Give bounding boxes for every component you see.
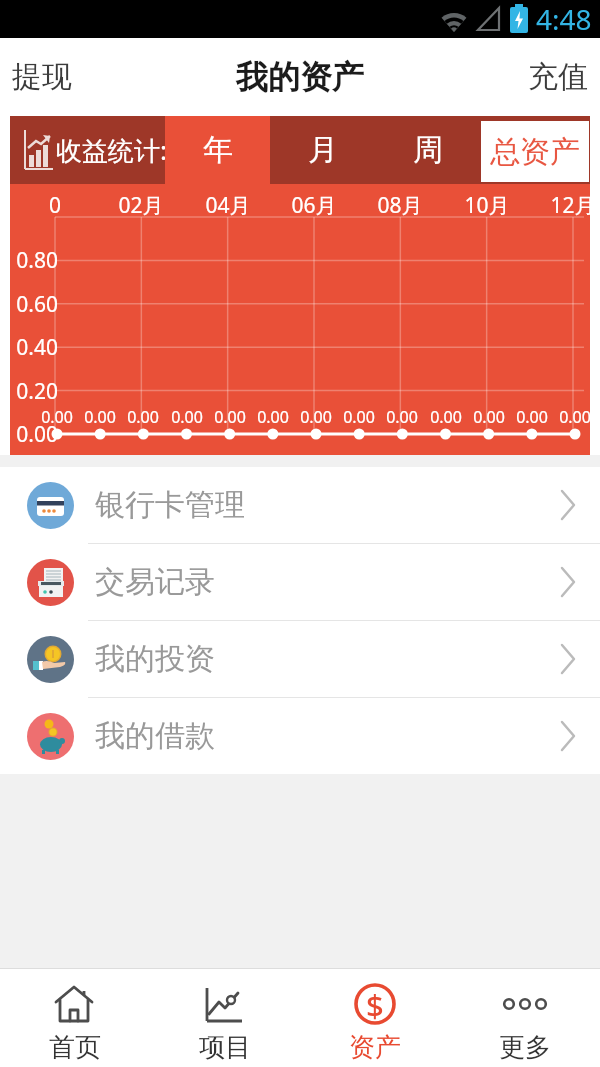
staticText: 我的资产 (236, 57, 364, 97)
staticText: 0.00 (123, 406, 163, 428)
staticText: $ (366, 984, 384, 1026)
button[interactable]: 首页 (0, 969, 150, 1067)
staticText: 我的投资 (95, 640, 560, 678)
staticText: 收益统计: (56, 132, 167, 168)
staticText: 4:48 (536, 0, 592, 38)
button[interactable]: 月 (270, 116, 375, 184)
button[interactable]: 项目 (150, 969, 300, 1067)
staticText: 首页 (49, 1031, 101, 1064)
staticText: 资产 (349, 1031, 401, 1064)
button[interactable]: 年 (165, 116, 270, 184)
staticText: 0.00 (426, 406, 466, 428)
staticText: 更多 (499, 1031, 551, 1064)
staticText: 02月 (106, 191, 176, 220)
staticText: 0 (20, 191, 90, 220)
staticText: 06月 (279, 191, 349, 220)
staticText: 银行卡管理 (95, 486, 560, 524)
staticText: 月 (308, 131, 338, 169)
staticText: 08月 (365, 191, 435, 220)
staticText: 周 (413, 131, 443, 169)
staticText: 交易记录 (95, 563, 560, 601)
staticText: 项目 (199, 1031, 251, 1064)
staticText: 0.00 (382, 406, 422, 428)
button[interactable]: 提现 (0, 50, 84, 104)
staticText: 0.00 (296, 406, 336, 428)
staticText: 0.00 (555, 406, 595, 428)
staticText: 0.40 (14, 333, 58, 362)
staticText: 0.20 (14, 377, 58, 406)
staticText: 0.00 (80, 406, 120, 428)
button[interactable]: 充值 (516, 50, 600, 104)
staticText: 0.00 (512, 406, 552, 428)
staticText: 0.00 (253, 406, 293, 428)
button[interactable]: 我的借款 (0, 698, 600, 774)
staticText: 0.00 (339, 406, 379, 428)
staticText: 0.00 (469, 406, 509, 428)
staticText: 提现 (12, 58, 72, 96)
staticText: 12月 (538, 191, 600, 220)
button[interactable]: $ (300, 969, 450, 1067)
staticText: 0.00 (210, 406, 250, 428)
button[interactable]: 总资产 (481, 121, 589, 182)
staticText: 0.00 (14, 420, 58, 449)
staticText: 年 (203, 131, 233, 169)
staticText: 总资产 (490, 133, 580, 171)
staticText: 04月 (193, 191, 263, 220)
button[interactable]: 我的投资 (0, 621, 600, 697)
staticText: 充值 (528, 58, 588, 96)
staticText: 0.60 (14, 290, 58, 319)
staticText: 10月 (452, 191, 522, 220)
staticText: 0.00 (167, 406, 207, 428)
staticText: 0.00 (37, 406, 77, 428)
button[interactable]: 更多 (450, 969, 600, 1067)
staticText: 我的借款 (95, 717, 560, 755)
button[interactable]: 周 (375, 116, 480, 184)
button[interactable]: 银行卡管理 (0, 467, 600, 543)
staticText: 0.80 (14, 246, 58, 275)
button[interactable]: 交易记录 (0, 544, 600, 620)
